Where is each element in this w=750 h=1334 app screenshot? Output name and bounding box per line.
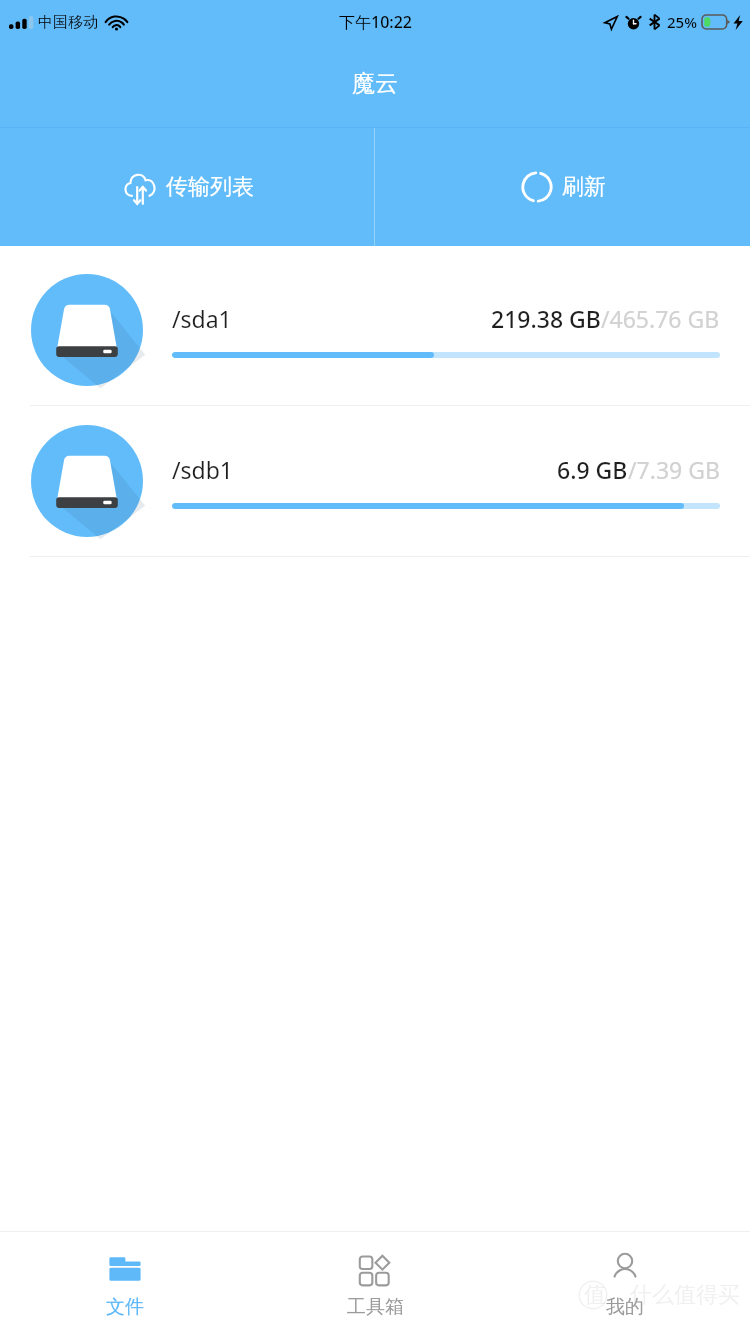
staticText: /sdb1 xyxy=(172,454,234,485)
staticText: /sda1 xyxy=(172,303,232,334)
staticText: 什么值得买 xyxy=(630,1281,740,1309)
staticText: /7.39 GB xyxy=(628,454,720,485)
staticText: 中国移动 xyxy=(38,13,98,32)
button[interactable]: /sdb1 xyxy=(0,406,750,556)
button[interactable]: 刷新 xyxy=(375,128,750,246)
button[interactable]: 传输列表 xyxy=(0,128,374,246)
button[interactable]: 工具箱 xyxy=(250,1231,500,1334)
staticText: 下午10:22 xyxy=(339,11,412,33)
staticText: 25% xyxy=(667,12,697,32)
staticText: 6.9 GB xyxy=(557,454,628,485)
button[interactable]: /sda1 xyxy=(0,255,750,405)
staticText: /465.76 GB xyxy=(601,303,720,334)
button[interactable]: 文件 xyxy=(0,1231,250,1334)
staticText: 魔云 xyxy=(352,69,398,98)
staticText: 值 xyxy=(584,1281,606,1309)
staticText: 刷新 xyxy=(562,173,606,201)
staticText: 传输列表 xyxy=(166,173,254,201)
staticText: 工具箱 xyxy=(347,1295,404,1319)
button[interactable]: 我的 xyxy=(500,1231,750,1334)
staticText: 219.38 GB xyxy=(491,303,601,334)
staticText: 我的 xyxy=(606,1295,644,1319)
staticText: 文件 xyxy=(106,1295,144,1319)
